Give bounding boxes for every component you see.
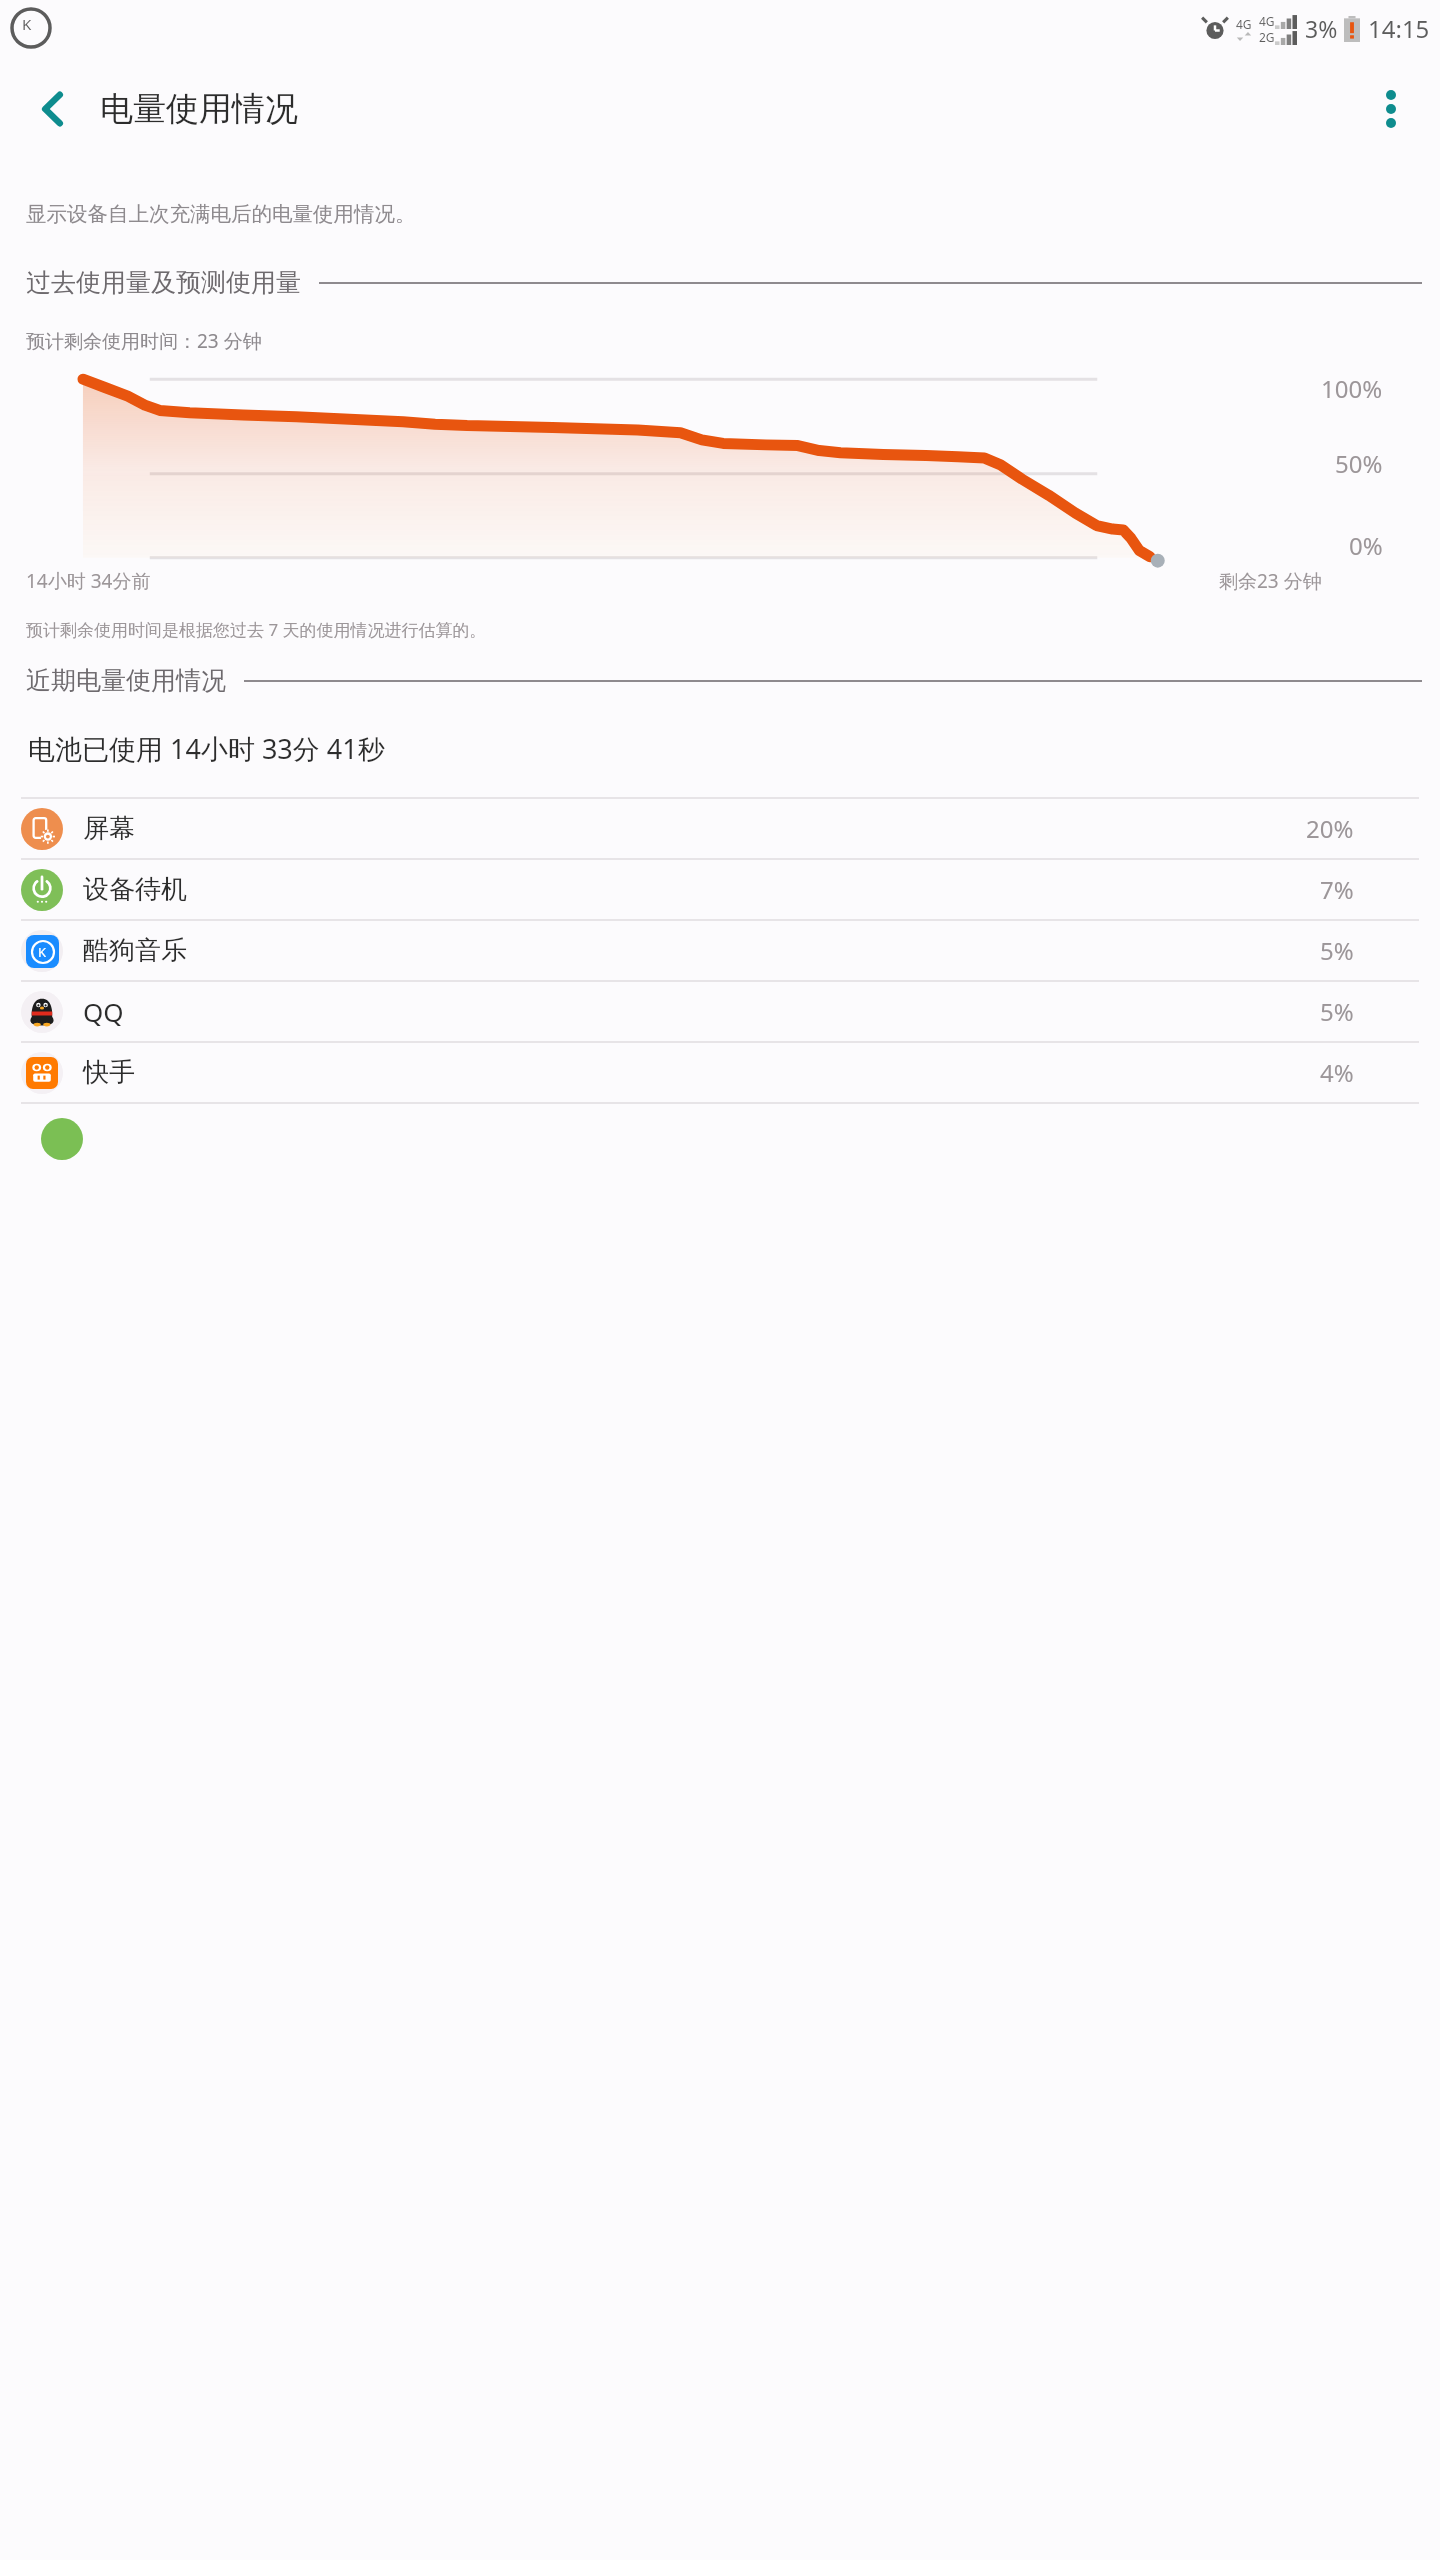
button[interactable]: 设备待机 [0, 860, 1440, 919]
staticText: 电池已使用 14小时 33分 41秒 [28, 730, 385, 767]
staticText: 近期电量使用情况 [26, 665, 226, 696]
staticText: 4G [1236, 16, 1252, 32]
button[interactable]: QQ [0, 982, 1440, 1041]
staticText: 预计剩余使用时间是根据您过去 7 天的使用情况进行估算的。 [26, 618, 487, 641]
staticText: 酷狗音乐 [83, 934, 187, 967]
staticText: 14:15 [1368, 12, 1430, 45]
button[interactable]: 屏幕 [0, 799, 1440, 858]
staticText: 3% [1305, 13, 1338, 44]
staticText: K [38, 943, 47, 961]
staticText: 5% [1320, 995, 1354, 1028]
staticText: 快手 [83, 1056, 135, 1089]
staticText: 电量使用情况 [100, 88, 298, 130]
button[interactable]: More options [1352, 70, 1430, 148]
staticText: 设备待机 [83, 873, 187, 906]
button[interactable]: Back [14, 70, 92, 148]
button[interactable]: K [0, 921, 1440, 980]
staticText: 屏幕 [83, 812, 135, 845]
staticText: 预计剩余使用时间：23 分钟 [26, 328, 262, 354]
staticText: 5% [1320, 934, 1354, 967]
staticText: 过去使用量及预测使用量 [26, 267, 301, 298]
staticText: 50% [1335, 447, 1383, 480]
staticText: 4% [1320, 1056, 1354, 1089]
staticText: K [22, 14, 32, 34]
staticText: 0% [1349, 529, 1383, 562]
button[interactable]: 快手 [0, 1043, 1440, 1102]
staticText: 14小时 34分前 [26, 568, 151, 594]
staticText: 剩余23 分钟 [1219, 568, 1322, 594]
staticText: 2G [1259, 29, 1275, 45]
staticText: QQ [83, 994, 124, 1029]
staticText: 100% [1321, 372, 1383, 405]
staticText: 7% [1320, 873, 1354, 906]
staticText: 4G [1259, 13, 1275, 29]
staticText: 20% [1306, 812, 1354, 845]
staticText: 显示设备自上次充满电后的电量使用情况。 [26, 201, 416, 227]
